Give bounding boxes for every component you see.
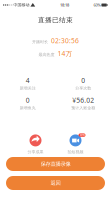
button[interactable]: 分享成果 xyxy=(15,134,55,154)
staticText: 60% xyxy=(93,2,100,8)
staticText: 0 xyxy=(26,96,30,105)
staticText: 18:18 xyxy=(60,2,69,8)
staticText: 中国移动 xyxy=(12,2,30,7)
staticText: 14万 xyxy=(57,49,72,58)
staticText: 4 xyxy=(26,76,30,85)
staticText: 开播时长 xyxy=(32,39,48,44)
staticText: 02:30:56 xyxy=(51,36,79,45)
staticText: ¥56.02 xyxy=(72,96,94,105)
staticText: 0 xyxy=(81,76,85,85)
staticText: 直播已结束 xyxy=(38,16,73,24)
button[interactable]: 返回 xyxy=(6,176,105,190)
button[interactable]: 保存直播录像 xyxy=(6,157,105,171)
staticText: 预计入账金额 xyxy=(71,105,95,110)
staticText: 分享次数 xyxy=(75,86,91,91)
staticText: NEW xyxy=(79,133,84,137)
staticText: 新增鱼丸 xyxy=(20,105,36,110)
staticText: 拍短视频 xyxy=(67,149,83,154)
staticText: 保存直播录像 xyxy=(40,161,70,167)
staticText: 最高热度 xyxy=(38,52,54,57)
staticText: 返回 xyxy=(50,180,60,186)
staticText: 新增关注 xyxy=(20,86,36,91)
button[interactable]: NEW xyxy=(55,134,95,154)
staticText: 分享成果 xyxy=(27,149,43,154)
